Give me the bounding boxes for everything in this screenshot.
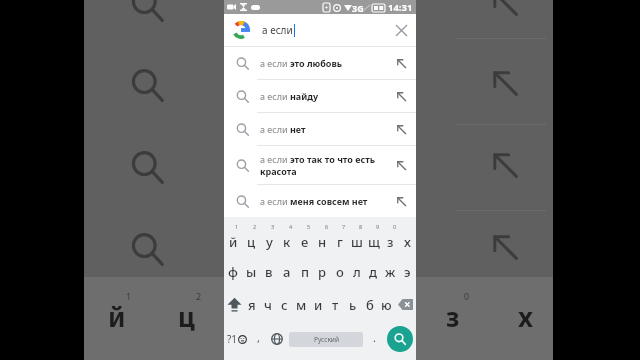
staticText: . (373, 330, 376, 345)
button[interactable]: я (244, 288, 260, 321)
button[interactable]: Insert suggestion (386, 81, 416, 111)
staticText: д (369, 263, 378, 281)
button[interactable]: Insert suggestion (386, 114, 416, 144)
button[interactable]: 8 (348, 223, 365, 255)
staticText: ф (228, 263, 238, 281)
staticText: а если (262, 23, 293, 37)
button[interactable]: ы (242, 255, 260, 288)
staticText: 8 (359, 223, 363, 230)
staticText: 4 (289, 223, 293, 230)
button[interactable]: 1 (224, 223, 242, 255)
button[interactable]: м (293, 288, 310, 321)
button[interactable]: а (278, 255, 296, 288)
button[interactable]: л (348, 255, 365, 288)
staticText: з (446, 299, 460, 334)
staticText: и (314, 296, 323, 314)
staticText: л (353, 263, 361, 281)
button[interactable]: 7 (331, 223, 348, 255)
button[interactable]: р (314, 255, 331, 288)
staticText: ш (351, 233, 363, 251)
staticText: т (332, 296, 339, 314)
button[interactable]: ь (344, 288, 361, 321)
staticText: з (387, 233, 394, 251)
button[interactable]: ч (260, 288, 276, 321)
staticText: й (108, 299, 126, 334)
button[interactable]: д (365, 255, 382, 288)
staticText: ю (381, 296, 392, 314)
staticText: с (281, 296, 288, 314)
button[interactable]: Insert suggestion (386, 186, 416, 216)
button[interactable]: а если найду (224, 80, 416, 112)
staticText: 1 (126, 290, 132, 302)
button[interactable]: с (276, 288, 293, 321)
button[interactable]: 6 (314, 223, 331, 255)
staticText: к (283, 233, 291, 251)
staticText: 2 (253, 223, 257, 230)
button[interactable]: и (310, 288, 327, 321)
button[interactable]: ф (224, 255, 242, 288)
button[interactable]: Search (383, 321, 416, 357)
button[interactable]: а если меня совсем нет (224, 185, 416, 217)
staticText: а если меня совсем нет (260, 195, 368, 207)
staticText: г (337, 233, 343, 251)
staticText: н (318, 233, 327, 251)
button[interactable]: , (250, 321, 267, 357)
button[interactable]: 5 (296, 223, 314, 255)
staticText: 0 (393, 223, 397, 230)
staticText: ц (178, 299, 195, 334)
staticText: 1 (235, 223, 239, 230)
staticText: э (404, 263, 411, 281)
button[interactable]: Symbols (224, 321, 250, 357)
staticText: а если найду (260, 90, 319, 102)
button[interactable]: а если нет (224, 113, 416, 145)
button[interactable]: п (296, 255, 314, 288)
staticText: 3G (352, 2, 364, 14)
button[interactable]: 3 (260, 223, 278, 255)
staticText: 2 (196, 290, 202, 302)
staticText: 5 (307, 223, 311, 230)
button[interactable]: Insert suggestion (386, 150, 416, 180)
button[interactable]: 4 (278, 223, 296, 255)
staticText: ы (246, 263, 257, 281)
button[interactable]: ж (382, 255, 399, 288)
staticText: х (404, 233, 411, 251)
staticText: е (301, 233, 309, 251)
button[interactable]: Insert suggestion (386, 48, 416, 78)
staticText: красота (260, 165, 297, 177)
button[interactable]: ю (378, 288, 395, 321)
button[interactable]: Clear search (388, 17, 414, 43)
staticText: 14:31 (388, 1, 413, 14)
button[interactable]: Shift (224, 288, 244, 321)
staticText: х (518, 299, 534, 334)
button[interactable]: а если это так то что есть (224, 146, 416, 184)
button[interactable]: . (366, 321, 383, 357)
button[interactable]: х (399, 223, 416, 255)
button[interactable]: а если (224, 14, 416, 46)
staticText: п (301, 263, 310, 281)
staticText: а если это любовь (260, 57, 343, 69)
staticText: у (266, 233, 273, 251)
staticText: б (366, 296, 374, 314)
button[interactable]: 2 (242, 223, 260, 255)
staticText: 9 (376, 223, 380, 230)
button[interactable]: б (361, 288, 378, 321)
button[interactable]: а если это любовь (224, 47, 416, 79)
button[interactable]: Backspace (395, 288, 416, 321)
staticText: Русский (314, 335, 339, 344)
staticText: а если это так то что есть (260, 153, 376, 165)
button[interactable]: э (399, 255, 416, 288)
button[interactable]: Русский (286, 321, 366, 357)
staticText: ж (385, 263, 396, 281)
button[interactable]: о (331, 255, 348, 288)
staticText: й (229, 233, 238, 251)
staticText: 0 (464, 290, 470, 302)
staticText: а если нет (260, 123, 306, 135)
staticText: а (283, 263, 291, 281)
button[interactable]: в (260, 255, 278, 288)
staticText: ч (264, 296, 272, 314)
button[interactable]: Change language (267, 321, 286, 357)
staticText: м (296, 296, 307, 314)
button[interactable]: 0 (382, 223, 399, 255)
button[interactable]: т (327, 288, 344, 321)
button[interactable]: 9 (365, 223, 382, 255)
